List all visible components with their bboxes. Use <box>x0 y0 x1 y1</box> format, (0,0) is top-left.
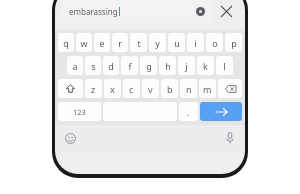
button[interactable]: Voice input <box>221 129 239 147</box>
staticText: g <box>146 60 152 72</box>
staticText: p <box>231 37 237 49</box>
staticText: e <box>99 37 105 49</box>
button[interactable]: w <box>76 33 92 52</box>
staticText: h <box>165 60 171 72</box>
button[interactable]: y <box>149 33 166 52</box>
button[interactable]: Backspace <box>218 79 242 98</box>
button[interactable]: . <box>179 102 198 121</box>
button[interactable]: Shift <box>58 79 83 98</box>
staticText: a <box>72 60 78 72</box>
button[interactable]: r <box>112 33 128 52</box>
button[interactable]: j <box>178 56 195 75</box>
button[interactable]: Emoji <box>61 129 79 147</box>
staticText: k <box>203 60 208 72</box>
button[interactable]: g <box>140 56 157 75</box>
staticText: i <box>194 37 197 49</box>
staticText: z <box>91 83 96 95</box>
button[interactable]: u <box>168 33 185 52</box>
staticText: . <box>187 106 190 118</box>
button[interactable]: h <box>159 56 176 75</box>
button[interactable]: k <box>197 56 214 75</box>
button[interactable]: v <box>142 79 159 98</box>
button[interactable]: a <box>67 56 83 75</box>
button[interactable]: 123 <box>58 102 101 121</box>
button[interactable]: e <box>94 33 110 52</box>
staticText: t <box>137 37 141 49</box>
staticText: embarassing <box>69 6 118 17</box>
button[interactable]: p <box>225 33 242 52</box>
button[interactable]: d <box>103 56 119 75</box>
staticText: n <box>186 83 192 95</box>
button[interactable]: s <box>85 56 101 75</box>
staticText: v <box>148 83 153 95</box>
button[interactable]: m <box>199 79 216 98</box>
staticText: d <box>108 60 114 72</box>
staticText: f <box>128 60 132 72</box>
staticText: y <box>155 37 160 49</box>
button[interactable]: i <box>187 33 204 52</box>
button[interactable]: q <box>58 33 74 52</box>
button[interactable]: b <box>161 79 178 98</box>
button[interactable]: z <box>85 79 102 98</box>
button[interactable]: x <box>104 79 121 98</box>
button[interactable]: n <box>180 79 197 98</box>
button[interactable]: c <box>123 79 140 98</box>
staticText: w <box>80 37 88 49</box>
staticText: s <box>91 60 96 72</box>
staticText: j <box>185 60 188 72</box>
button[interactable]: l <box>216 56 233 75</box>
staticText: m <box>203 83 212 95</box>
staticText: q <box>63 37 69 49</box>
button[interactable]: Close <box>213 0 239 23</box>
staticText: u <box>174 37 180 49</box>
staticText: o <box>212 37 218 49</box>
button[interactable]: f <box>121 56 138 75</box>
button[interactable]: Enter <box>200 102 242 121</box>
button[interactable]: Clear text <box>191 2 209 20</box>
button[interactable]: o <box>206 33 223 52</box>
staticText: r <box>118 37 122 49</box>
staticText: l <box>223 60 226 72</box>
button[interactable]: t <box>130 33 147 52</box>
button[interactable]: embarassing <box>61 0 213 23</box>
staticText: c <box>129 83 134 95</box>
staticText: 123 <box>73 107 86 117</box>
staticText: b <box>167 83 173 95</box>
staticText: x <box>110 83 115 95</box>
